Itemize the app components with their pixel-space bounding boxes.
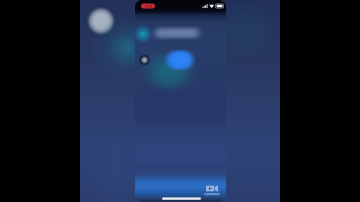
staticText: VIDEOSHOW xyxy=(204,192,220,196)
staticText: 0:14 xyxy=(144,3,151,9)
